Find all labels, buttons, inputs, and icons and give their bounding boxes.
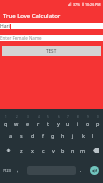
button[interactable]: 1 [0,113,11,128]
staticText: True Love Calculator [3,12,61,20]
button[interactable]: Shift [0,143,16,158]
staticText: u [66,120,70,127]
staticText: 8 [77,115,79,119]
button[interactable]: k [78,128,88,143]
staticText: n [71,147,75,154]
staticText: Hari [0,23,10,29]
staticText: v [52,147,55,154]
button[interactable]: 2 [11,113,22,128]
button[interactable]: 9 [83,113,93,128]
staticText: k [82,132,85,139]
button[interactable]: 5 [43,113,53,128]
staticText: 5 [47,115,49,119]
staticText: 9 [87,115,89,119]
staticText: m [80,147,86,154]
button[interactable]: x [27,143,38,158]
button[interactable]: z [16,143,27,158]
button[interactable]: 0 [93,113,103,128]
staticText: z [20,147,23,154]
button[interactable]: Enter [85,158,103,183]
button[interactable]: TEST [2,46,101,56]
staticText: s [20,132,23,139]
button[interactable]: b [58,143,68,158]
button[interactable]: , [13,158,22,183]
button[interactable]: l [88,128,98,143]
button[interactable]: 6 [53,113,63,128]
staticText: x [31,147,34,154]
button[interactable]: n [68,143,78,158]
staticText: . [80,167,82,174]
staticText: d [31,132,35,139]
staticText: q [4,120,8,127]
staticText: Enter Female Name [0,35,42,41]
staticText: p [96,120,100,127]
staticText: 6 [58,115,60,119]
staticText: 0 [97,115,99,119]
staticText: a [9,132,13,139]
staticText: 3 [27,115,29,119]
button[interactable]: 3 [22,113,33,128]
staticText: t [47,120,49,127]
staticText: y [57,120,60,127]
button[interactable]: Backspace [88,143,103,158]
staticText: c [42,147,45,154]
staticText: i [77,120,79,127]
button[interactable]: j [68,128,78,143]
button[interactable]: a [5,128,16,143]
staticText: 37% [73,2,81,7]
button[interactable]: 8 [73,113,83,128]
staticText: 2 [16,115,18,119]
staticText: 4 [38,115,40,119]
staticText: j [72,132,74,139]
button[interactable]: f [38,128,48,143]
button[interactable]: c [38,143,48,158]
button[interactable]: Hari [0,23,103,29]
button[interactable]: 4 [33,113,43,128]
staticText: e [26,120,30,127]
staticText: h [61,132,65,139]
button[interactable]: h [58,128,68,143]
staticText: b [61,147,65,154]
staticText: o [86,120,90,127]
staticText: ?123 [3,168,11,173]
button[interactable]: Enter Female Name [0,35,103,41]
button[interactable]: v [48,143,58,158]
staticText: g [51,132,55,139]
staticText: 1 [5,115,7,119]
button[interactable]: ?123 [0,158,13,183]
staticText: 10:26 PM [85,2,101,7]
staticText: r [37,120,40,127]
button[interactable]: s [16,128,27,143]
button[interactable]: 7 [63,113,73,128]
button[interactable]: . [76,158,85,183]
staticText: w [14,120,19,127]
button[interactable]: d [27,128,38,143]
staticText: f [42,132,44,139]
button[interactable]: m [78,143,88,158]
staticText: 7 [67,115,69,119]
button[interactable]: g [48,128,58,143]
staticText: , [17,167,19,174]
staticText: TEST [46,48,57,54]
staticText: l [92,132,94,139]
